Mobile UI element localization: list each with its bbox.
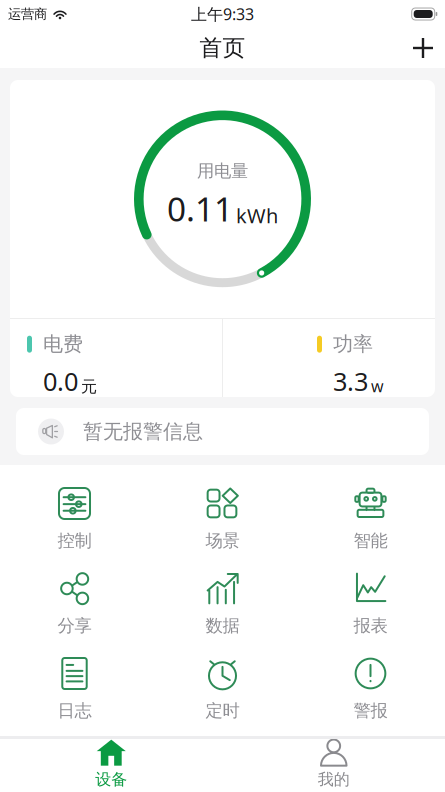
button[interactable]: 报表 [296,572,444,657]
button[interactable]: 设备 [0,736,222,792]
button[interactable]: 控制 [0,487,148,572]
staticText: 上午9:33 [191,3,254,25]
staticText: 警报 [353,700,387,721]
button[interactable]: 警报 [296,657,444,742]
staticText: 0.11 [167,186,233,231]
staticText: 控制 [57,530,91,551]
button[interactable]: 暂无报警信息 [16,408,429,455]
staticText: w [371,375,384,397]
staticText: 首页 [199,34,245,62]
button[interactable]: 我的 [222,736,445,792]
staticText: 报表 [353,615,387,636]
staticText: 功率 [333,332,373,356]
button[interactable]: 智能 [296,487,444,572]
staticText: 定时 [205,700,239,721]
staticText: 日志 [57,700,91,721]
staticText: 0.0 [43,364,78,398]
staticText: 数据 [205,615,239,636]
staticText: 场景 [205,530,239,551]
button[interactable]: 数据 [148,572,296,657]
staticText: 电费 [43,332,83,356]
staticText: 我的 [318,770,350,789]
button[interactable]: Add [401,28,445,68]
staticText: 3.3 [333,364,368,398]
staticText: kWh [236,202,278,229]
staticText: 设备 [95,770,127,789]
staticText: 暂无报警信息 [83,419,203,444]
staticText: 元 [81,377,97,397]
button[interactable]: 分享 [0,572,148,657]
staticText: 运营商 [8,6,47,22]
staticText: 智能 [353,530,387,551]
button[interactable]: 定时 [148,657,296,742]
button[interactable]: 场景 [148,487,296,572]
staticText: 分享 [57,615,91,636]
staticText: 用电量 [197,160,248,181]
button[interactable]: 日志 [0,657,148,742]
